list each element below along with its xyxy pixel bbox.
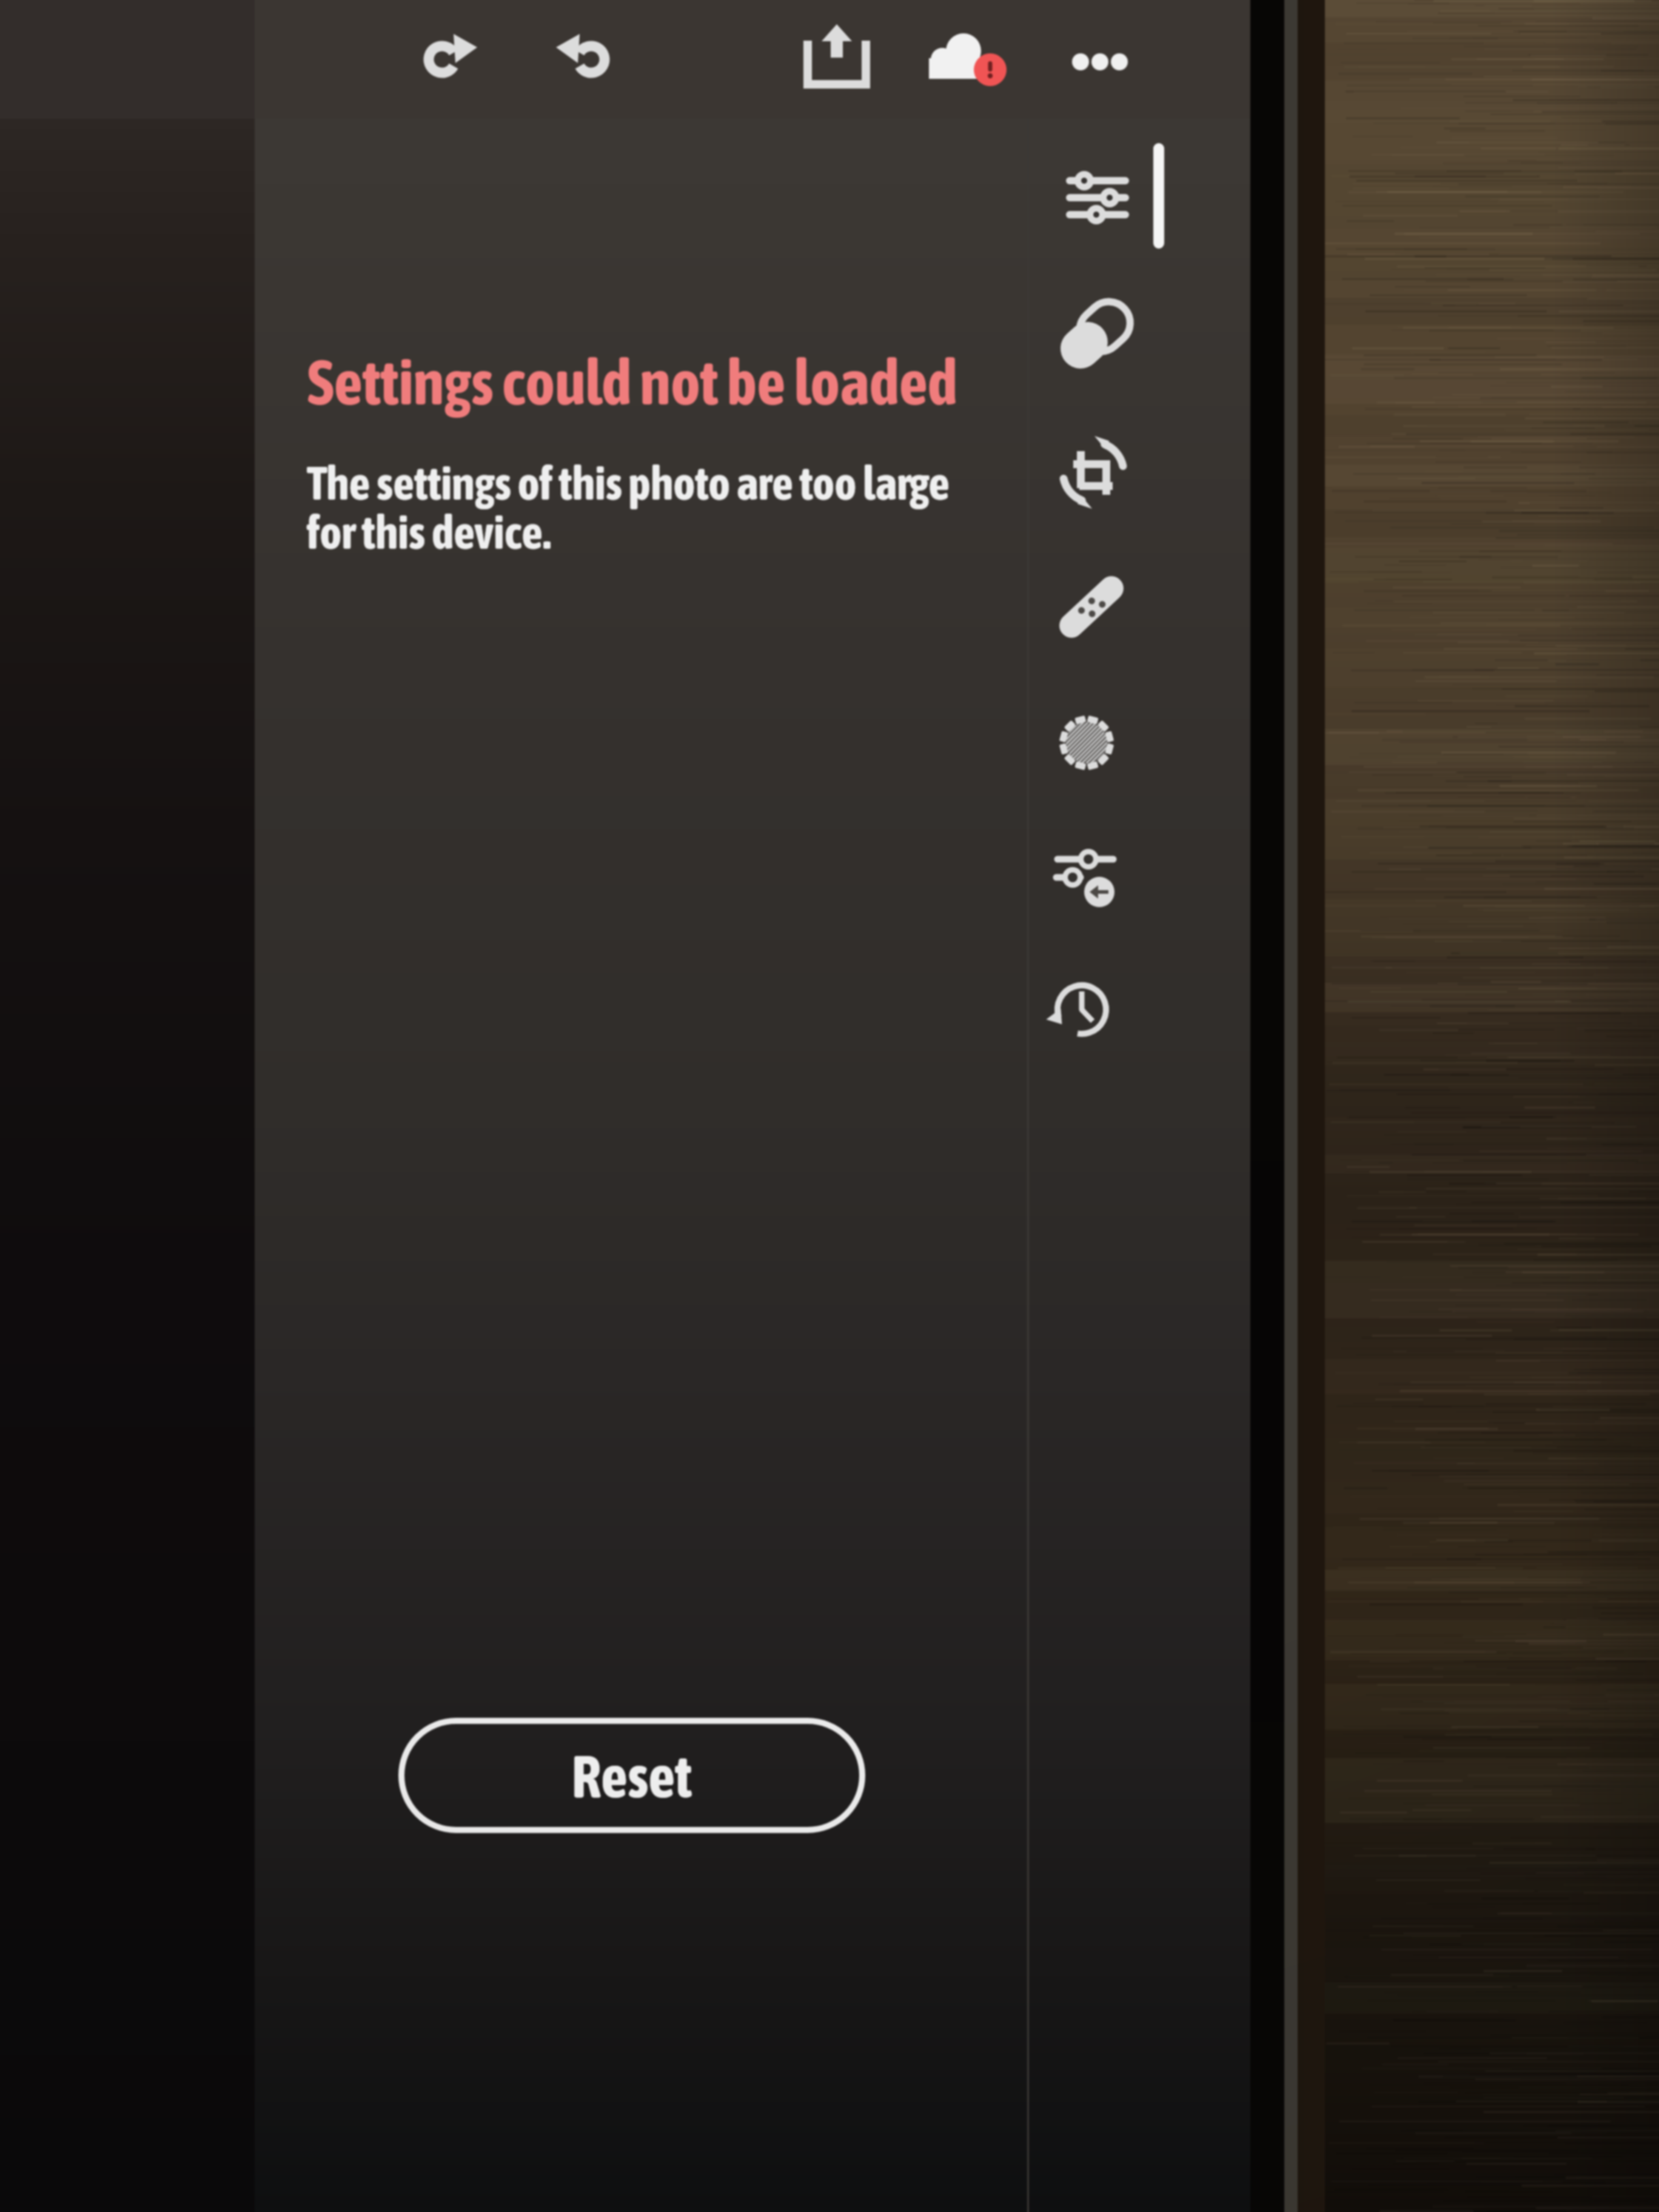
button[interactable]: More options xyxy=(1045,5,1155,114)
button[interactable]: Redo xyxy=(388,5,497,114)
button[interactable]: Versions history xyxy=(1027,955,1136,1064)
button[interactable]: Crop and rotate xyxy=(1039,418,1148,527)
button[interactable]: Optics xyxy=(1040,281,1149,390)
button[interactable]: Reset xyxy=(400,1721,862,1831)
button[interactable]: Presets xyxy=(1031,821,1140,930)
button[interactable]: Edit xyxy=(1043,143,1152,252)
button[interactable]: Share xyxy=(782,5,891,114)
button[interactable]: Undo xyxy=(537,5,646,114)
button[interactable]: Masking xyxy=(1032,688,1141,797)
button[interactable]: Cloud sync error xyxy=(913,5,1022,114)
button[interactable]: Healing brush xyxy=(1037,552,1146,662)
